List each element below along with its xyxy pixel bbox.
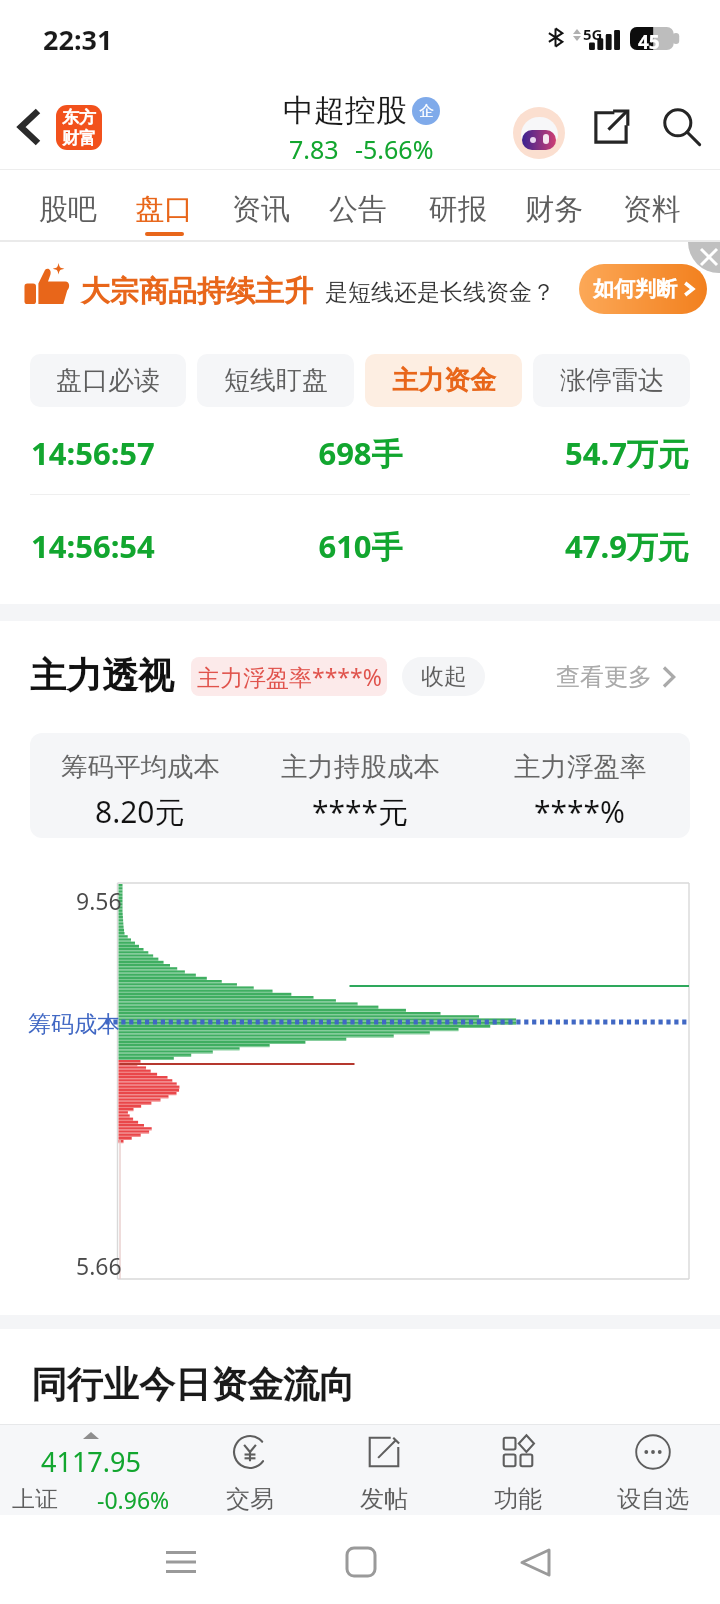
staticText: 中超控股 [283, 91, 407, 130]
staticText: 发帖 [360, 1484, 408, 1514]
button[interactable]: Share [583, 99, 639, 155]
button[interactable]: 资料 [608, 170, 696, 242]
staticText: 公告 [329, 191, 387, 228]
button[interactable]: 短线盯盘 [197, 354, 354, 407]
staticText: 功能 [494, 1484, 542, 1514]
staticText: 698手 [251, 432, 470, 474]
button[interactable]: Back [0, 84, 58, 170]
staticText: 筹码成本 [28, 1010, 120, 1039]
staticText: 45 [638, 29, 660, 55]
staticText: 主力资金 [392, 364, 496, 397]
staticText: 主力透视 [30, 653, 174, 698]
staticText: 上证 [12, 1485, 58, 1514]
staticText: 财务 [525, 191, 583, 228]
button[interactable]: Home [326, 1527, 396, 1597]
staticText: -5.66% [355, 132, 434, 166]
button[interactable]: Back [500, 1527, 570, 1597]
button[interactable]: 财务 [510, 170, 598, 242]
staticText: 收起 [421, 662, 467, 691]
staticText: 14:56:54 [31, 525, 251, 567]
button[interactable]: 如何判断 [579, 264, 707, 314]
button[interactable]: 功能 [450, 1424, 585, 1515]
staticText: 资讯 [232, 191, 290, 228]
button[interactable]: 设自选 [585, 1424, 720, 1515]
staticText: 4117.95 [41, 1443, 141, 1480]
button[interactable]: 盘口 [120, 170, 208, 242]
staticText: 盘口 [135, 191, 193, 228]
staticText: 查看更多 [556, 662, 652, 692]
staticText: 东方 [62, 107, 96, 128]
button[interactable]: Close [688, 242, 720, 273]
staticText: 同行业今日资金流向 [31, 1362, 355, 1407]
staticText: 8.20元 [95, 791, 185, 832]
button[interactable]: 收起 [402, 657, 485, 696]
button[interactable]: 东方 [56, 105, 102, 150]
staticText: 14:56:57 [31, 432, 251, 474]
button[interactable]: 查看更多 [556, 657, 675, 697]
button[interactable]: 主力资金 [365, 354, 522, 407]
button[interactable]: Recents [146, 1527, 216, 1597]
staticText: 盘口必读 [56, 364, 160, 397]
button[interactable]: 交易 [182, 1424, 317, 1515]
staticText: 设自选 [617, 1484, 689, 1514]
staticText: ****元 [312, 791, 409, 832]
staticText: 9.56 [76, 885, 122, 916]
staticText: 交易 [226, 1484, 274, 1514]
staticText: 22:31 [43, 21, 113, 58]
staticText: 7.83 [289, 132, 339, 166]
staticText: 主力持股成本 [281, 750, 440, 783]
staticText: 资料 [623, 191, 681, 228]
button[interactable]: 14:56:54 [31, 511, 689, 581]
button[interactable]: 资讯 [217, 170, 305, 242]
button[interactable]: 涨停雷达 [533, 354, 690, 407]
staticText: 是短线还是长线资金？ [325, 278, 555, 307]
staticText: 5G [583, 24, 603, 44]
staticText: 短线盯盘 [224, 364, 328, 397]
staticText: 47.9万元 [470, 525, 689, 567]
staticText: 涨停雷达 [560, 364, 664, 397]
staticText: 股吧 [39, 191, 97, 228]
staticText: 大宗商品持续主升 [81, 273, 313, 310]
button[interactable]: 盘口必读 [30, 354, 186, 407]
button[interactable]: 主力浮盈率****% [191, 657, 387, 696]
button[interactable]: Search [654, 99, 710, 155]
staticText: 财富 [62, 128, 96, 149]
staticText: 如何判断 [593, 276, 677, 302]
button[interactable]: 发帖 [316, 1424, 451, 1515]
staticText: 54.7万元 [470, 432, 689, 474]
button[interactable]: 公告 [314, 170, 402, 242]
staticText: 主力浮盈率 [514, 750, 647, 783]
staticText: -0.96% [97, 1484, 170, 1515]
button[interactable]: 14:56:57 [31, 418, 689, 488]
staticText: 5.66 [76, 1250, 122, 1281]
button[interactable]: 研报 [414, 170, 502, 242]
staticText: 筹码平均成本 [61, 750, 220, 783]
staticText: 主力浮盈率****% [197, 661, 382, 692]
button[interactable]: AI assistant [505, 99, 573, 167]
staticText: 研报 [429, 191, 487, 228]
staticText: 企 [419, 102, 434, 121]
staticText: ****% [534, 791, 626, 832]
button[interactable]: 股吧 [24, 170, 112, 242]
staticText: 610手 [251, 525, 470, 567]
button[interactable]: 4117.95 [0, 1424, 182, 1515]
